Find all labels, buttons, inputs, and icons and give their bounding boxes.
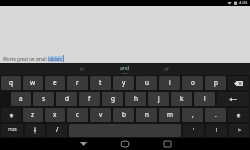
button[interactable]: and	[103, 63, 145, 75]
staticText: of	[164, 66, 169, 73]
staticText: k	[180, 94, 184, 103]
button[interactable]: Enter	[217, 92, 249, 106]
staticText: n	[145, 110, 149, 119]
button[interactable]: n	[136, 108, 157, 122]
staticText: tablets	[48, 56, 63, 62]
button[interactable]: Close keyboard	[62, 138, 104, 150]
staticText: g	[111, 94, 115, 103]
button[interactable]: y	[113, 76, 134, 90]
staticText: z	[31, 110, 35, 119]
button[interactable]: i	[159, 76, 180, 90]
button[interactable]: a	[11, 92, 31, 106]
staticText: l	[204, 94, 206, 103]
button[interactable]: u	[136, 76, 157, 90]
button[interactable]: Home	[104, 138, 146, 150]
staticText: !	[216, 126, 218, 133]
staticText: p	[214, 78, 218, 87]
button[interactable]: Backspace	[228, 76, 249, 90]
button[interactable]: Voice input	[25, 124, 45, 137]
staticText: in	[80, 66, 85, 73]
button[interactable]: g	[102, 92, 123, 106]
staticText: ?123	[8, 127, 17, 132]
button[interactable]: Shift	[1, 108, 21, 122]
button[interactable]: o	[182, 76, 203, 90]
button[interactable]: Recents	[146, 138, 188, 150]
staticText: t	[99, 78, 102, 87]
button[interactable]: q	[1, 76, 21, 90]
staticText: d	[65, 94, 69, 103]
staticText: h	[134, 94, 138, 103]
button[interactable]: in	[62, 63, 103, 75]
staticText: u	[145, 78, 149, 87]
button[interactable]: k	[171, 92, 192, 106]
button[interactable]: b	[113, 108, 134, 122]
button[interactable]: m	[159, 108, 180, 122]
button[interactable]: f	[79, 92, 100, 106]
button[interactable]: s	[33, 92, 54, 106]
button[interactable]: d	[56, 92, 77, 106]
staticText: m	[167, 110, 173, 119]
staticText: w	[30, 78, 36, 87]
staticText: '	[193, 126, 195, 134]
button[interactable]: >	[229, 124, 249, 137]
staticText: r	[76, 78, 79, 87]
staticText: /	[56, 125, 59, 134]
staticText: s	[42, 94, 46, 103]
staticText: Works great on small	[3, 56, 48, 62]
staticText: e	[53, 78, 57, 87]
staticText: b	[122, 110, 126, 119]
button[interactable]: c	[67, 108, 88, 122]
staticText: and	[120, 65, 129, 72]
button[interactable]: ?123	[1, 124, 23, 137]
button[interactable]: ,	[182, 108, 203, 122]
button[interactable]: z	[23, 108, 43, 122]
button[interactable]: v	[90, 108, 111, 122]
staticText: j	[158, 94, 160, 103]
staticText: y	[122, 78, 126, 87]
staticText: c	[76, 110, 80, 119]
button[interactable]: x	[45, 108, 65, 122]
staticText: v	[99, 110, 103, 119]
staticText: a	[19, 94, 23, 103]
button[interactable]: '	[183, 124, 204, 137]
button[interactable]: Shift	[228, 108, 249, 122]
staticText: ,	[192, 110, 194, 119]
button[interactable]: /	[47, 124, 67, 137]
button[interactable]: j	[148, 92, 169, 106]
button[interactable]: w	[23, 76, 43, 90]
staticText: >	[238, 126, 241, 133]
staticText: :	[60, 125, 61, 130]
staticText: .	[215, 110, 217, 119]
staticText: o	[191, 78, 195, 87]
button[interactable]: t	[90, 76, 111, 90]
staticText: x	[53, 110, 57, 119]
button[interactable]: of	[145, 63, 187, 75]
button[interactable]: e	[45, 76, 65, 90]
button[interactable]: h	[125, 92, 146, 106]
button[interactable]: l	[194, 92, 215, 106]
staticText: i	[169, 78, 171, 87]
staticText: 4:33	[239, 0, 248, 6]
button[interactable]: .	[205, 108, 226, 122]
button[interactable]: !	[206, 124, 227, 137]
staticText: f	[88, 94, 91, 103]
button[interactable]: p	[205, 76, 226, 90]
staticText: q	[9, 78, 13, 87]
button[interactable]: r	[67, 76, 88, 90]
